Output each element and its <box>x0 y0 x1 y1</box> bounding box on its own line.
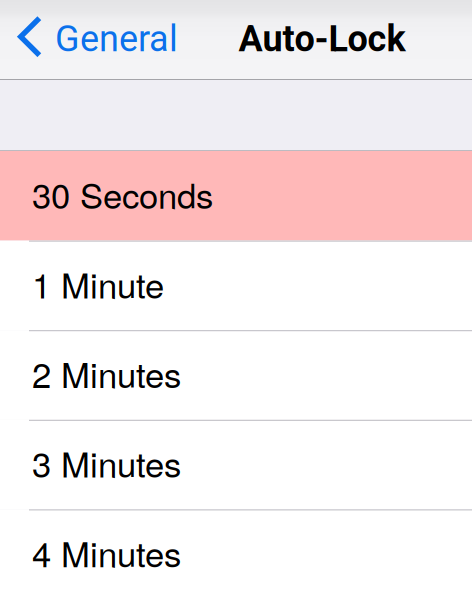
button[interactable]: 4 Minutes <box>0 509 472 599</box>
staticText: 2 Minutes <box>32 348 181 398</box>
button[interactable]: 1 Minute <box>0 241 472 330</box>
staticText: General <box>55 18 178 60</box>
staticText: 4 Minutes <box>32 527 181 577</box>
staticText: 1 Minute <box>32 259 164 308</box>
button[interactable]: 30 Seconds <box>0 151 472 241</box>
button[interactable]: 2 Minutes <box>0 330 472 420</box>
staticText: 3 Minutes <box>32 438 181 487</box>
button[interactable]: 3 Minutes <box>0 420 472 509</box>
staticText: Auto-Lock <box>238 18 405 60</box>
staticText: 30 Seconds <box>32 169 213 219</box>
button[interactable]: General <box>0 11 190 67</box>
